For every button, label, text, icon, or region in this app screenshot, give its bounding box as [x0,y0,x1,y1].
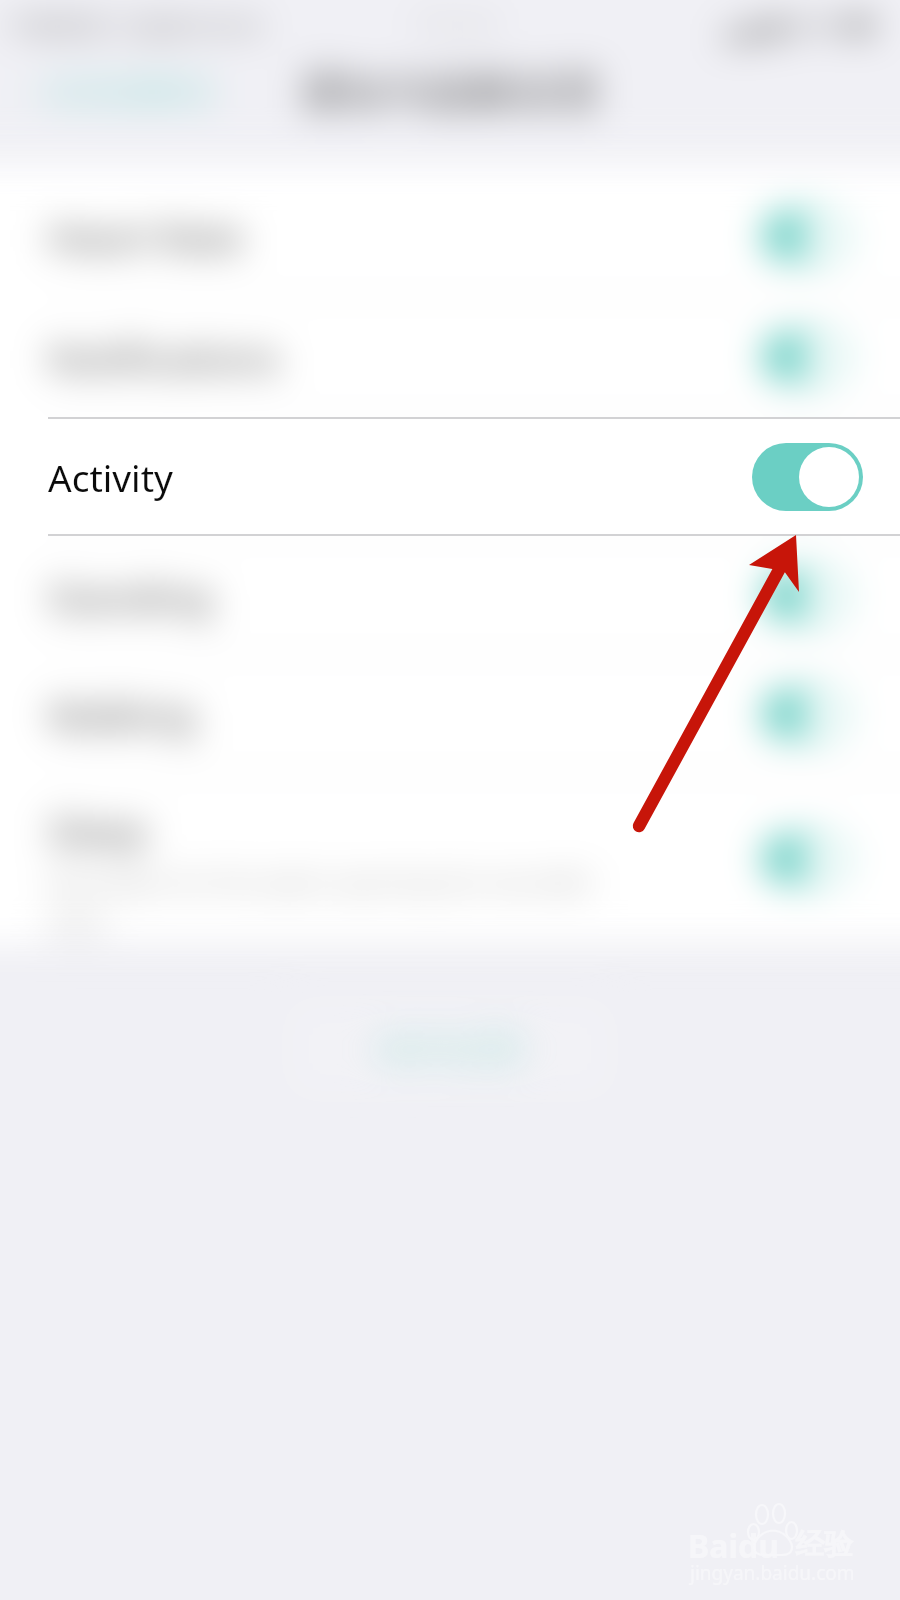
staticText: Heart Rate [48,210,244,263]
staticText: Activity [48,452,752,502]
staticText: 通知与提醒设置 [300,66,601,120]
staticText: Sleep [48,804,148,857]
button[interactable]: Sleep, on [762,834,848,884]
staticText: ‹ 信息提醒设 [26,67,216,113]
button[interactable]: Standing, on [762,571,848,621]
button[interactable]: 保存设置 [284,998,616,1100]
button[interactable]: Activity, on [752,443,863,511]
button[interactable]: Heart Rate, on [762,211,848,261]
button[interactable]: Activity, on [762,452,848,502]
button[interactable]: Sleep [0,773,900,945]
staticText: ▂▄ ■ 64% [722,9,842,42]
button[interactable]: Standing [0,537,900,655]
button[interactable]: Heart Rate [0,166,900,298]
button[interactable]: Activity [0,416,900,537]
button[interactable]: ‹ 信息提醒设 [18,58,224,122]
staticText: Notifications [48,331,280,384]
button[interactable]: Notifications, on [762,332,848,382]
button[interactable]: Walking, on [762,689,848,739]
button[interactable]: Activity [0,417,900,536]
button[interactable]: Walking [0,655,900,773]
staticText: Activity [48,450,180,503]
button[interactable]: Notifications [0,298,900,416]
staticText: Standing [48,570,212,623]
staticText: Walking [48,688,195,741]
